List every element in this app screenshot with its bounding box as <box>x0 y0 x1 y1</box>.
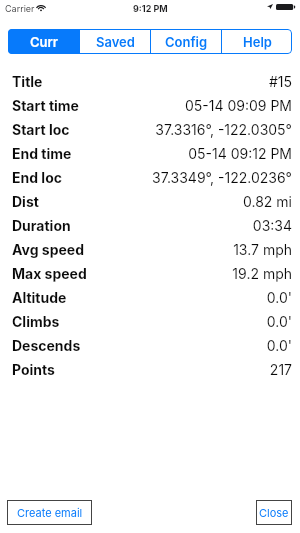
button[interactable]: Max speed <box>12 261 292 285</box>
other: Location services active <box>267 4 273 9</box>
button[interactable]: Create email <box>7 500 92 525</box>
staticText: Climbs <box>12 313 60 330</box>
staticText: End time <box>12 145 72 162</box>
staticText: Carrier <box>5 3 35 14</box>
staticText: 0.0' <box>266 289 292 306</box>
button[interactable]: End loc <box>12 165 292 189</box>
button[interactable]: Start time <box>12 93 292 117</box>
button[interactable]: Duration <box>12 213 292 237</box>
button[interactable]: Climbs <box>12 309 292 333</box>
staticText: 37.3316°, -122.0305° <box>155 121 292 138</box>
button[interactable]: End time <box>12 141 292 165</box>
button[interactable]: Avg speed <box>12 237 292 261</box>
button[interactable]: Title <box>12 69 292 93</box>
staticText: 0.0' <box>266 337 292 354</box>
staticText: Duration <box>12 217 71 234</box>
staticText: Config <box>165 34 208 50</box>
staticText: Saved <box>96 34 135 50</box>
staticText: 217 <box>269 361 292 378</box>
staticText: Start loc <box>12 121 70 138</box>
other: Battery full <box>276 4 295 10</box>
button[interactable]: Close <box>256 500 292 525</box>
button[interactable]: Dist <box>12 189 292 213</box>
staticText: 05-14 09:09 PM <box>184 97 292 114</box>
staticText: 0.82 mi <box>243 193 292 210</box>
staticText: 13.7 mph <box>233 241 292 258</box>
staticText: Dist <box>12 193 39 210</box>
staticText: Title <box>12 73 43 90</box>
other: Wi-Fi signal <box>36 4 46 11</box>
staticText: Altitude <box>12 289 67 306</box>
staticText: Curr <box>30 34 58 50</box>
button[interactable]: Altitude <box>12 285 292 309</box>
staticText: 05-14 09:12 PM <box>188 145 292 162</box>
button[interactable]: Config <box>151 29 221 54</box>
staticText: Avg speed <box>12 241 84 258</box>
staticText: 03:34 <box>252 217 292 234</box>
button[interactable]: Saved <box>80 29 150 54</box>
button[interactable]: Curr <box>8 29 79 54</box>
staticText: Max speed <box>12 265 87 282</box>
staticText: End loc <box>12 169 62 186</box>
staticText: Close <box>259 506 289 519</box>
staticText: Descends <box>12 337 81 354</box>
button[interactable]: Help <box>222 29 292 54</box>
staticText: 0.0' <box>266 313 292 330</box>
staticText: 9:12 PM <box>133 3 168 14</box>
staticText: Help <box>243 34 272 50</box>
button[interactable]: Descends <box>12 333 292 357</box>
staticText: Start time <box>12 97 79 114</box>
button[interactable]: Start loc <box>12 117 292 141</box>
staticText: #15 <box>268 73 292 90</box>
staticText: 37.3349°, -122.0236° <box>152 169 292 186</box>
staticText: Points <box>12 361 55 378</box>
staticText: Create email <box>17 506 83 519</box>
staticText: 19.2 mph <box>232 265 292 282</box>
button[interactable]: Points <box>12 357 292 381</box>
